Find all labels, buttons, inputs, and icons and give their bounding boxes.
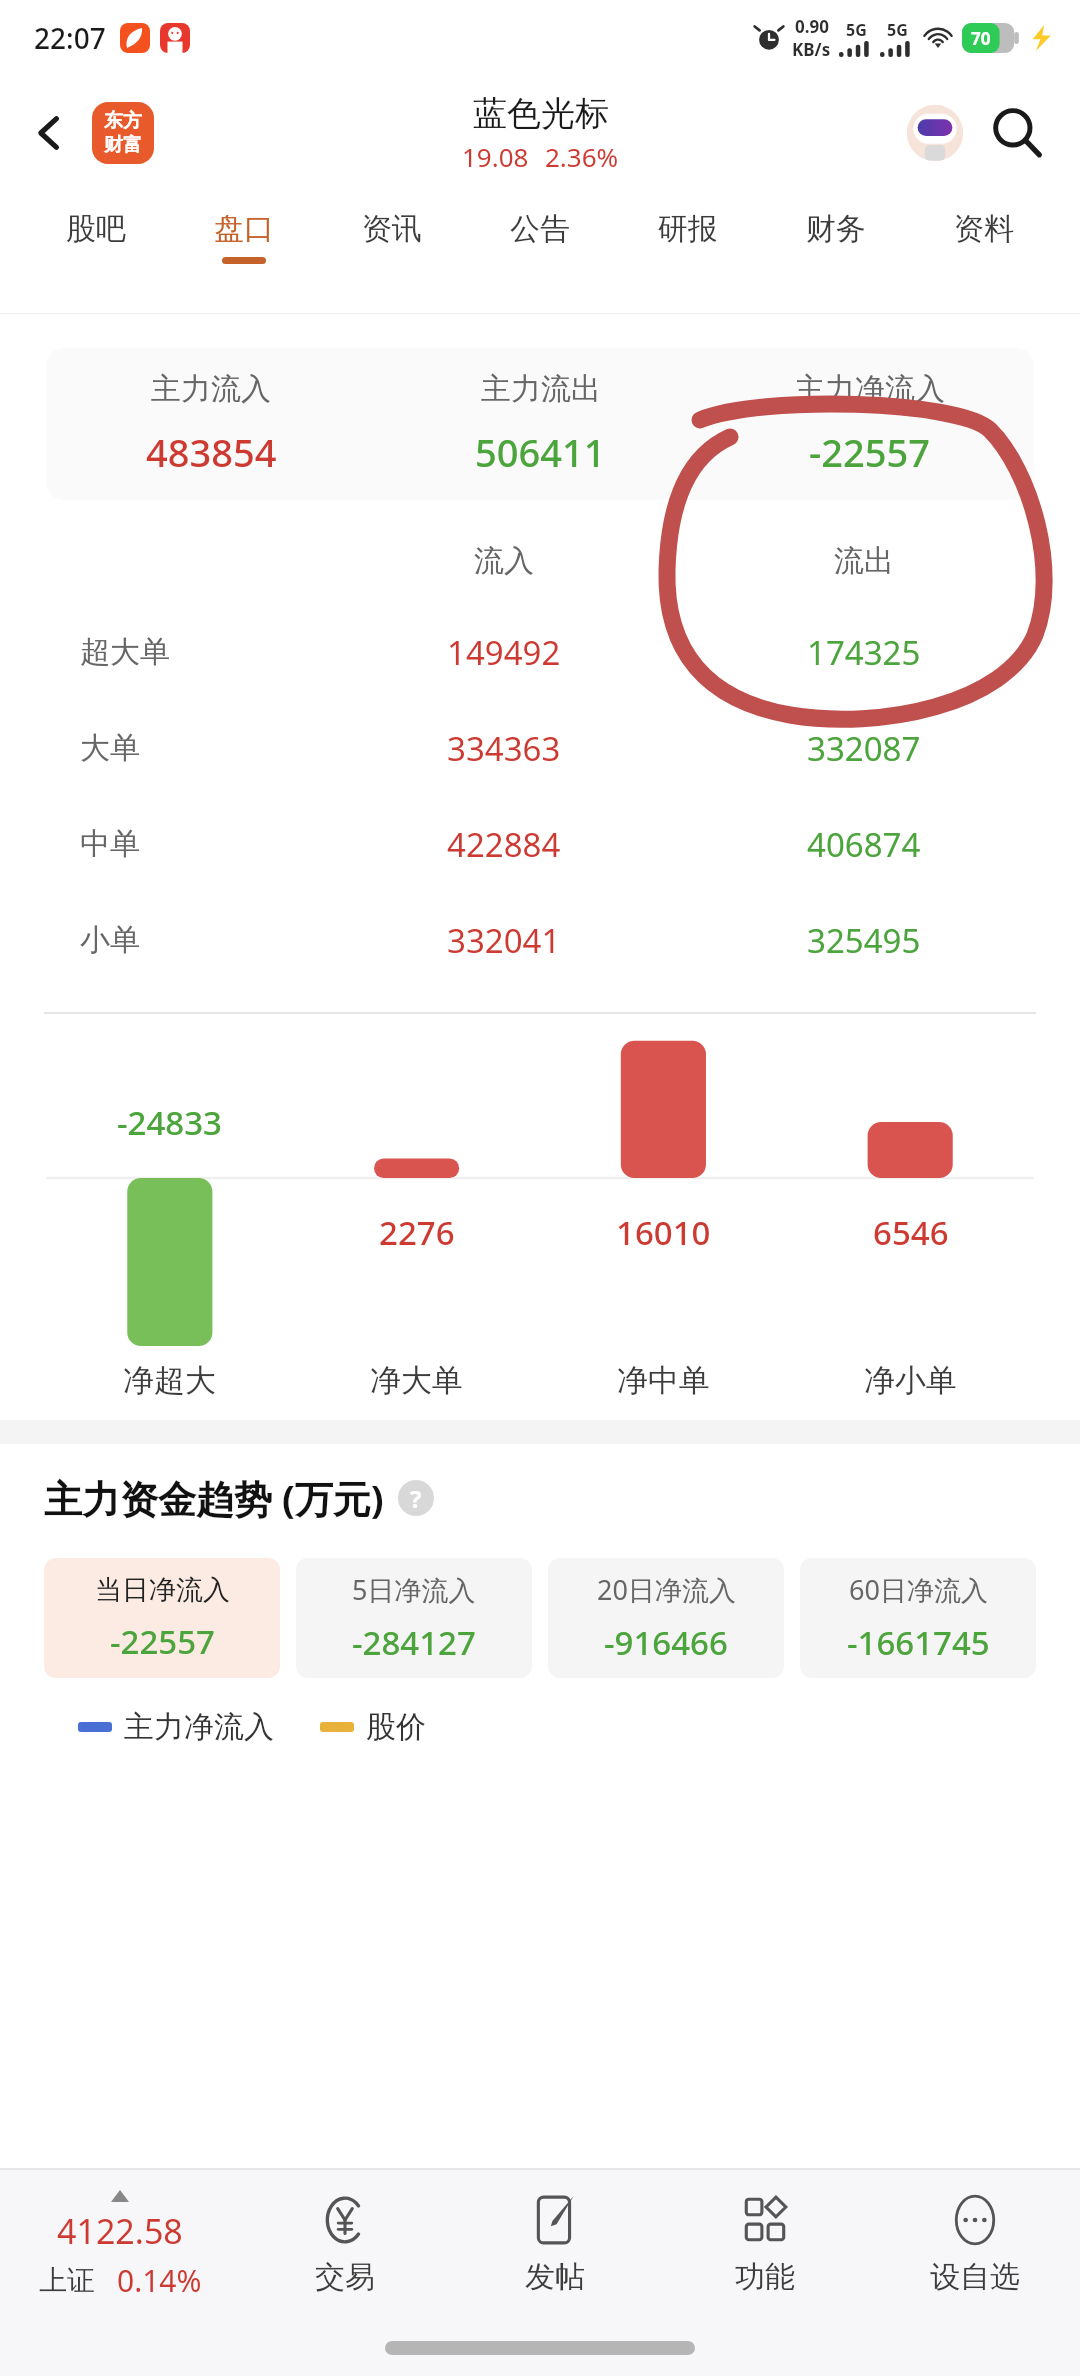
staticText: 功能	[735, 2258, 795, 2296]
staticText: -916466	[604, 1620, 728, 1665]
staticText: 股价	[366, 1708, 426, 1746]
staticText: 净中单	[617, 1361, 710, 1400]
staticText: 70	[971, 27, 991, 50]
button[interactable]: 中单	[36, 796, 1044, 892]
staticText: 中单	[80, 825, 140, 863]
staticText: 净超大	[123, 1361, 216, 1400]
staticText: 研报	[658, 210, 718, 248]
staticText: 主力流入	[151, 370, 271, 408]
button[interactable]: 20日净流入	[548, 1558, 784, 1678]
button[interactable]: Help	[398, 1480, 434, 1516]
staticText: 60日净流入	[849, 1571, 988, 1608]
button[interactable]: 4122.58	[0, 2170, 240, 2320]
staticText: 大单	[80, 729, 140, 767]
button[interactable]: 财务	[762, 190, 910, 284]
staticText: 2276	[379, 1210, 455, 1255]
staticText: 483854	[146, 426, 277, 478]
staticText: 蓝色光标	[473, 92, 609, 135]
button[interactable]: Search	[980, 96, 1054, 170]
staticText: -24833	[117, 1100, 222, 1145]
button[interactable]: 小单	[36, 892, 1044, 988]
button[interactable]: 功能	[660, 2170, 870, 2320]
staticText: 20日净流入	[597, 1571, 736, 1608]
staticText: 当日净流入	[95, 1573, 230, 1607]
button[interactable]: 大单	[36, 700, 1044, 796]
staticText: 0.14%	[117, 2260, 202, 2301]
staticText: 422884	[447, 822, 561, 867]
button[interactable]: 主力流出	[376, 348, 705, 500]
staticText: 149492	[447, 630, 561, 675]
staticText: 0.90	[795, 15, 829, 38]
button[interactable]: Back	[18, 102, 80, 164]
staticText: 盘口	[214, 210, 274, 248]
button[interactable]: 超大单	[36, 604, 1044, 700]
button[interactable]: 盘口	[170, 190, 318, 284]
button[interactable]: 主力流入	[46, 348, 1034, 500]
staticText: 股吧	[66, 210, 126, 248]
button[interactable]: 设自选	[870, 2170, 1080, 2320]
staticText: 主力净流入	[795, 370, 945, 408]
staticText: 4122.58	[57, 2208, 183, 2254]
button[interactable]: 主力流入	[46, 348, 376, 500]
staticText: -1661745	[847, 1620, 990, 1665]
staticText: 流入	[474, 542, 534, 580]
staticText: 332041	[447, 918, 561, 963]
staticText: 174325	[807, 630, 921, 675]
staticText: 6546	[873, 1210, 949, 1255]
staticText: -284127	[352, 1620, 476, 1665]
staticText: 5G	[846, 19, 867, 41]
button[interactable]: East Money	[92, 102, 154, 164]
staticText: 5日净流入	[352, 1571, 476, 1608]
staticText: 上证	[39, 2263, 95, 2298]
staticText: 流出	[834, 542, 894, 580]
staticText: 净大单	[370, 1361, 463, 1400]
staticText: 2.36%	[545, 139, 619, 174]
staticText: 超大单	[80, 633, 170, 671]
button[interactable]: 60日净流入	[800, 1558, 1036, 1678]
staticText: 设自选	[930, 2258, 1020, 2296]
staticText: 22:07	[34, 19, 106, 57]
button[interactable]: 资料	[910, 190, 1058, 284]
button[interactable]: 资讯	[318, 190, 466, 284]
staticText: 5G	[887, 19, 908, 41]
staticText: -22557	[809, 426, 930, 478]
staticText: 资讯	[362, 210, 422, 248]
staticText: 小单	[80, 921, 140, 959]
staticText: 发帖	[525, 2258, 585, 2296]
button[interactable]: 研报	[614, 190, 762, 284]
staticText: 资料	[954, 210, 1014, 248]
button[interactable]: 股吧	[22, 190, 170, 284]
staticText: 334363	[447, 726, 561, 771]
button[interactable]: 发帖	[450, 2170, 660, 2320]
staticText: ?	[410, 1482, 422, 1515]
staticText: 506411	[475, 426, 606, 478]
staticText: 财务	[806, 210, 866, 248]
staticText: 交易	[315, 2258, 375, 2296]
staticText: 主力资金趋势 (万元)	[44, 1472, 384, 1524]
staticText: 东方	[104, 109, 142, 133]
staticText: 16010	[616, 1210, 711, 1255]
staticText: 332087	[807, 726, 921, 771]
button[interactable]: 公告	[466, 190, 614, 284]
staticText: -22557	[110, 1619, 215, 1664]
staticText: 主力流出	[481, 370, 601, 408]
staticText: 406874	[807, 822, 921, 867]
staticText: 净小单	[864, 1361, 957, 1400]
staticText: KB/s	[792, 38, 831, 61]
staticText: 325495	[807, 918, 921, 963]
staticText: 公告	[510, 210, 570, 248]
button[interactable]: 当日净流入	[44, 1558, 280, 1678]
staticText: 主力净流入	[124, 1708, 274, 1746]
button[interactable]: 交易	[240, 2170, 450, 2320]
button[interactable]: Assistant	[898, 96, 972, 170]
staticText: 财富	[104, 133, 142, 157]
button[interactable]: 5日净流入	[296, 1558, 532, 1678]
staticText: 19.08	[462, 139, 529, 174]
button[interactable]: 主力净流入	[705, 348, 1034, 500]
